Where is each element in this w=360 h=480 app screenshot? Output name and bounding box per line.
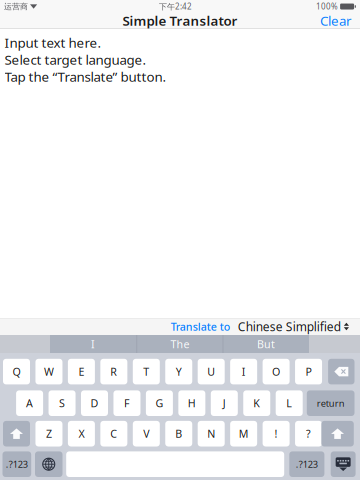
button[interactable]: J: [211, 390, 238, 416]
staticText: W: [44, 364, 54, 379]
button[interactable]: !: [263, 421, 290, 446]
button[interactable]: Translate to: [171, 316, 231, 337]
staticText: !: [275, 427, 278, 441]
button[interactable]: E: [68, 359, 95, 384]
staticText: Y: [176, 364, 182, 379]
button[interactable]: L: [276, 390, 303, 416]
button[interactable]: But: [223, 335, 309, 353]
staticText: Input text here.: [4, 34, 101, 51]
staticText: L: [286, 396, 292, 410]
staticText: O: [272, 364, 280, 379]
button[interactable]: R: [100, 359, 127, 384]
staticText: 运营商: [4, 2, 28, 11]
button[interactable]: P: [295, 359, 322, 384]
button[interactable]: F: [113, 390, 140, 416]
staticText: F: [124, 396, 130, 410]
staticText: return: [317, 397, 345, 409]
staticText: I: [242, 364, 246, 379]
staticText: But: [257, 337, 275, 351]
button[interactable]: O: [263, 359, 290, 384]
staticText: H: [188, 396, 196, 410]
staticText: Clear: [320, 12, 352, 29]
staticText: N: [207, 427, 215, 441]
staticText: .?123: [296, 458, 318, 470]
button[interactable]: I: [50, 335, 136, 353]
staticText: T: [143, 364, 149, 379]
button[interactable]: W: [35, 359, 62, 384]
staticText: X: [78, 427, 84, 441]
button[interactable]: Z: [35, 421, 62, 446]
button[interactable]: return: [307, 390, 354, 416]
button[interactable]: Delete: [328, 359, 354, 384]
button[interactable]: S: [49, 390, 76, 416]
button[interactable]: Shift: [321, 421, 354, 446]
staticText: K: [253, 396, 260, 410]
staticText: D: [90, 396, 98, 410]
button[interactable]: T: [133, 359, 160, 384]
button[interactable]: Hide keyboard: [331, 451, 356, 477]
button[interactable]: C: [100, 421, 127, 446]
button[interactable]: A: [16, 390, 43, 416]
staticText: Chinese Simplified: [238, 318, 341, 334]
button[interactable]: G: [146, 390, 173, 416]
button[interactable]: Chinese Simplified: [231, 315, 349, 337]
button[interactable]: The: [137, 335, 223, 353]
button[interactable]: Y: [165, 359, 192, 384]
button[interactable]: Q: [3, 359, 30, 384]
button[interactable]: .?123: [289, 451, 324, 477]
button[interactable]: Next keyboard: [35, 451, 62, 477]
staticText: B: [175, 427, 182, 441]
staticText: ?: [306, 427, 311, 441]
button[interactable]: Clear: [312, 10, 360, 31]
staticText: R: [110, 364, 117, 379]
staticText: Select target language.: [4, 51, 146, 68]
staticText: Simple Translator: [122, 12, 237, 29]
staticText: V: [143, 427, 149, 441]
staticText: Tap the “Translate” button.: [4, 68, 166, 85]
staticText: C: [110, 427, 117, 441]
staticText: A: [26, 396, 33, 410]
button[interactable]: ?: [295, 421, 322, 446]
button[interactable]: H: [178, 390, 205, 416]
staticText: G: [155, 396, 163, 410]
staticText: Q: [12, 364, 20, 379]
button[interactable]: Shift: [3, 421, 30, 446]
staticText: .?123: [6, 458, 28, 470]
staticText: 下午2:42: [159, 1, 192, 12]
button[interactable]: I: [230, 359, 257, 384]
button[interactable]: N: [198, 421, 225, 446]
staticText: Translate to: [171, 319, 231, 334]
button[interactable]: U: [198, 359, 225, 384]
staticText: I: [91, 337, 95, 351]
button[interactable]: B: [165, 421, 192, 446]
button[interactable]: .?123: [2, 451, 31, 477]
button[interactable]: X: [68, 421, 95, 446]
button[interactable]: V: [133, 421, 160, 446]
staticText: P: [306, 364, 312, 379]
button[interactable]: space: [66, 451, 284, 477]
staticText: E: [78, 364, 84, 379]
button[interactable]: M: [230, 421, 257, 446]
button[interactable]: D: [81, 390, 108, 416]
staticText: J: [223, 396, 226, 410]
staticText: U: [207, 364, 215, 379]
staticText: S: [59, 396, 65, 410]
staticText: 100%: [316, 1, 338, 12]
staticText: The: [170, 337, 189, 351]
staticText: Z: [46, 427, 52, 441]
staticText: M: [239, 427, 249, 441]
button[interactable]: K: [243, 390, 270, 416]
